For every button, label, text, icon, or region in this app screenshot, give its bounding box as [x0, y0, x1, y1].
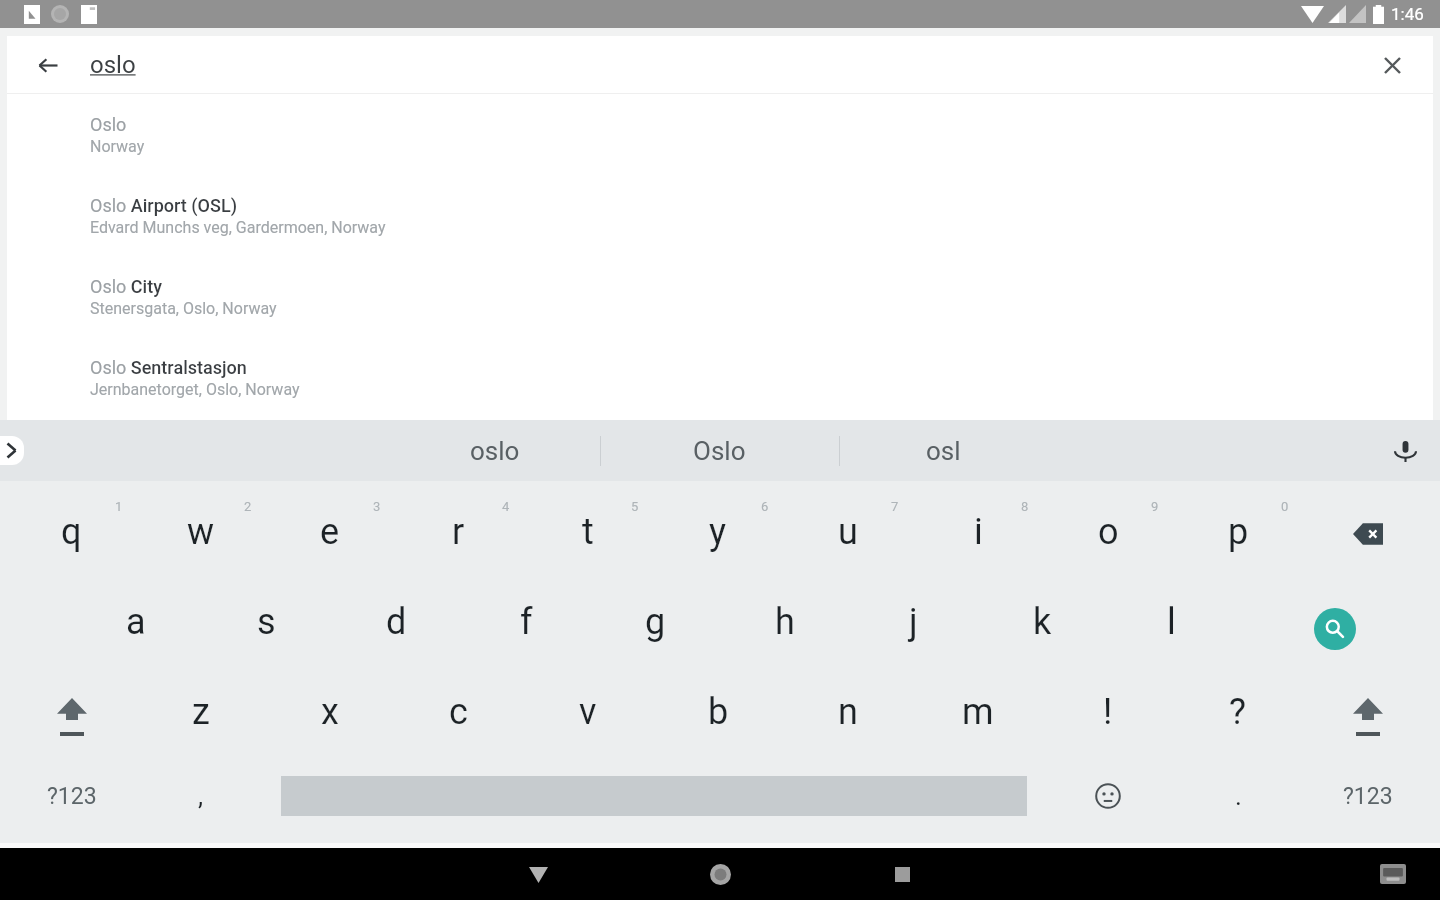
staticText: 4: [502, 499, 510, 514]
button[interactable]: d: [331, 571, 461, 661]
button[interactable]: q: [7, 481, 136, 571]
staticText: Oslo: [693, 436, 746, 466]
staticText: 8: [1021, 499, 1029, 514]
staticText: 2: [244, 499, 252, 514]
button[interactable]: Oslo: [600, 420, 839, 481]
button[interactable]: v: [523, 661, 653, 751]
button[interactable]: More suggestions: [0, 436, 24, 465]
staticText: z: [192, 691, 210, 733]
button[interactable]: ?123: [7, 751, 136, 841]
button[interactable]: n: [783, 661, 913, 751]
staticText: Oslo Sentralstasjon: [90, 357, 247, 378]
button[interactable]: g: [591, 571, 720, 661]
button[interactable]: Shift: [7, 661, 136, 751]
staticText: Oslo City: [90, 276, 162, 297]
staticText: p: [1228, 511, 1249, 553]
staticText: g: [645, 601, 666, 643]
button[interactable]: a: [71, 571, 201, 661]
staticText: 1:46: [1391, 4, 1424, 24]
button[interactable]: p: [1173, 481, 1303, 571]
button[interactable]: f: [461, 571, 591, 661]
staticText: m: [962, 691, 994, 733]
staticText: 5: [631, 499, 639, 514]
button[interactable]: w: [136, 481, 265, 571]
button[interactable]: s: [201, 571, 331, 661]
staticText: v: [579, 691, 597, 733]
button[interactable]: y: [653, 481, 783, 571]
staticText: t: [582, 511, 594, 553]
staticText: Edvard Munchs veg, Gardermoen, Norway: [90, 218, 386, 237]
staticText: f: [520, 601, 533, 643]
button[interactable]: r: [394, 481, 523, 571]
staticText: u: [838, 511, 858, 553]
staticText: 3: [373, 499, 381, 514]
staticText: n: [838, 691, 858, 733]
staticText: ?123: [1343, 783, 1393, 810]
staticText: j: [909, 601, 918, 643]
staticText: 1: [115, 499, 123, 514]
button[interactable]: c: [394, 661, 523, 751]
staticText: osl: [926, 436, 961, 466]
button[interactable]: osl: [839, 420, 1078, 481]
button[interactable]: oslo: [361, 420, 600, 481]
staticText: x: [321, 691, 339, 733]
staticText: 6: [761, 499, 769, 514]
staticText: e: [320, 511, 340, 553]
button[interactable]: Space: [265, 751, 1043, 841]
staticText: b: [708, 691, 729, 733]
button[interactable]: Recent apps: [878, 850, 926, 898]
staticText: r: [452, 511, 465, 553]
button[interactable]: t: [523, 481, 653, 571]
button[interactable]: Back: [21, 38, 75, 92]
button[interactable]: e: [265, 481, 394, 571]
button[interactable]: ?123: [1303, 751, 1433, 841]
button[interactable]: x: [265, 661, 394, 751]
button[interactable]: m: [913, 661, 1043, 751]
button[interactable]: Oslo Sentralstasjon: [7, 337, 1433, 418]
staticText: Jernbanetorget, Oslo, Norway: [90, 380, 300, 399]
button[interactable]: .: [1173, 751, 1303, 841]
button[interactable]: Search: [1236, 571, 1433, 661]
staticText: a: [126, 601, 146, 643]
staticText: o: [1098, 511, 1119, 553]
button[interactable]: u: [783, 481, 913, 571]
staticText: ,: [198, 781, 204, 811]
button[interactable]: b: [653, 661, 783, 751]
staticText: c: [449, 691, 468, 733]
staticText: s: [257, 601, 276, 643]
button[interactable]: Home: [696, 850, 744, 898]
button[interactable]: Shift: [1303, 661, 1433, 751]
button[interactable]: Emoji: [1043, 751, 1173, 841]
button[interactable]: l: [1107, 571, 1236, 661]
button[interactable]: Oslo Airport (OSL): [7, 175, 1433, 256]
button[interactable]: Back: [514, 850, 562, 898]
button[interactable]: Oslo: [7, 94, 1433, 175]
button[interactable]: !: [1043, 661, 1173, 751]
button[interactable]: h: [720, 571, 849, 661]
staticText: y: [709, 511, 727, 553]
button[interactable]: Clear search: [1368, 41, 1416, 89]
button[interactable]: Oslo City: [7, 256, 1433, 337]
staticText: h: [775, 601, 795, 643]
staticText: Norway: [90, 137, 145, 156]
staticText: !: [1103, 691, 1113, 733]
button[interactable]: Backspace: [1303, 481, 1433, 571]
button[interactable]: o: [1043, 481, 1173, 571]
button[interactable]: k: [978, 571, 1107, 661]
button[interactable]: ?: [1173, 661, 1303, 751]
staticText: oslo: [470, 436, 520, 466]
staticText: 7: [891, 499, 899, 514]
staticText: .: [1235, 781, 1242, 811]
staticText: Oslo: [90, 114, 127, 135]
button[interactable]: j: [849, 571, 978, 661]
staticText: 0: [1281, 499, 1289, 514]
button[interactable]: Change keyboard: [1369, 850, 1417, 898]
staticText: q: [61, 511, 82, 553]
button[interactable]: i: [913, 481, 1043, 571]
staticText: ?123: [47, 783, 97, 810]
button[interactable]: z: [136, 661, 265, 751]
staticText: ?: [1229, 691, 1247, 733]
button[interactable]: ,: [136, 751, 265, 841]
button[interactable]: Voice input: [1385, 431, 1425, 471]
staticText: w: [187, 511, 215, 553]
